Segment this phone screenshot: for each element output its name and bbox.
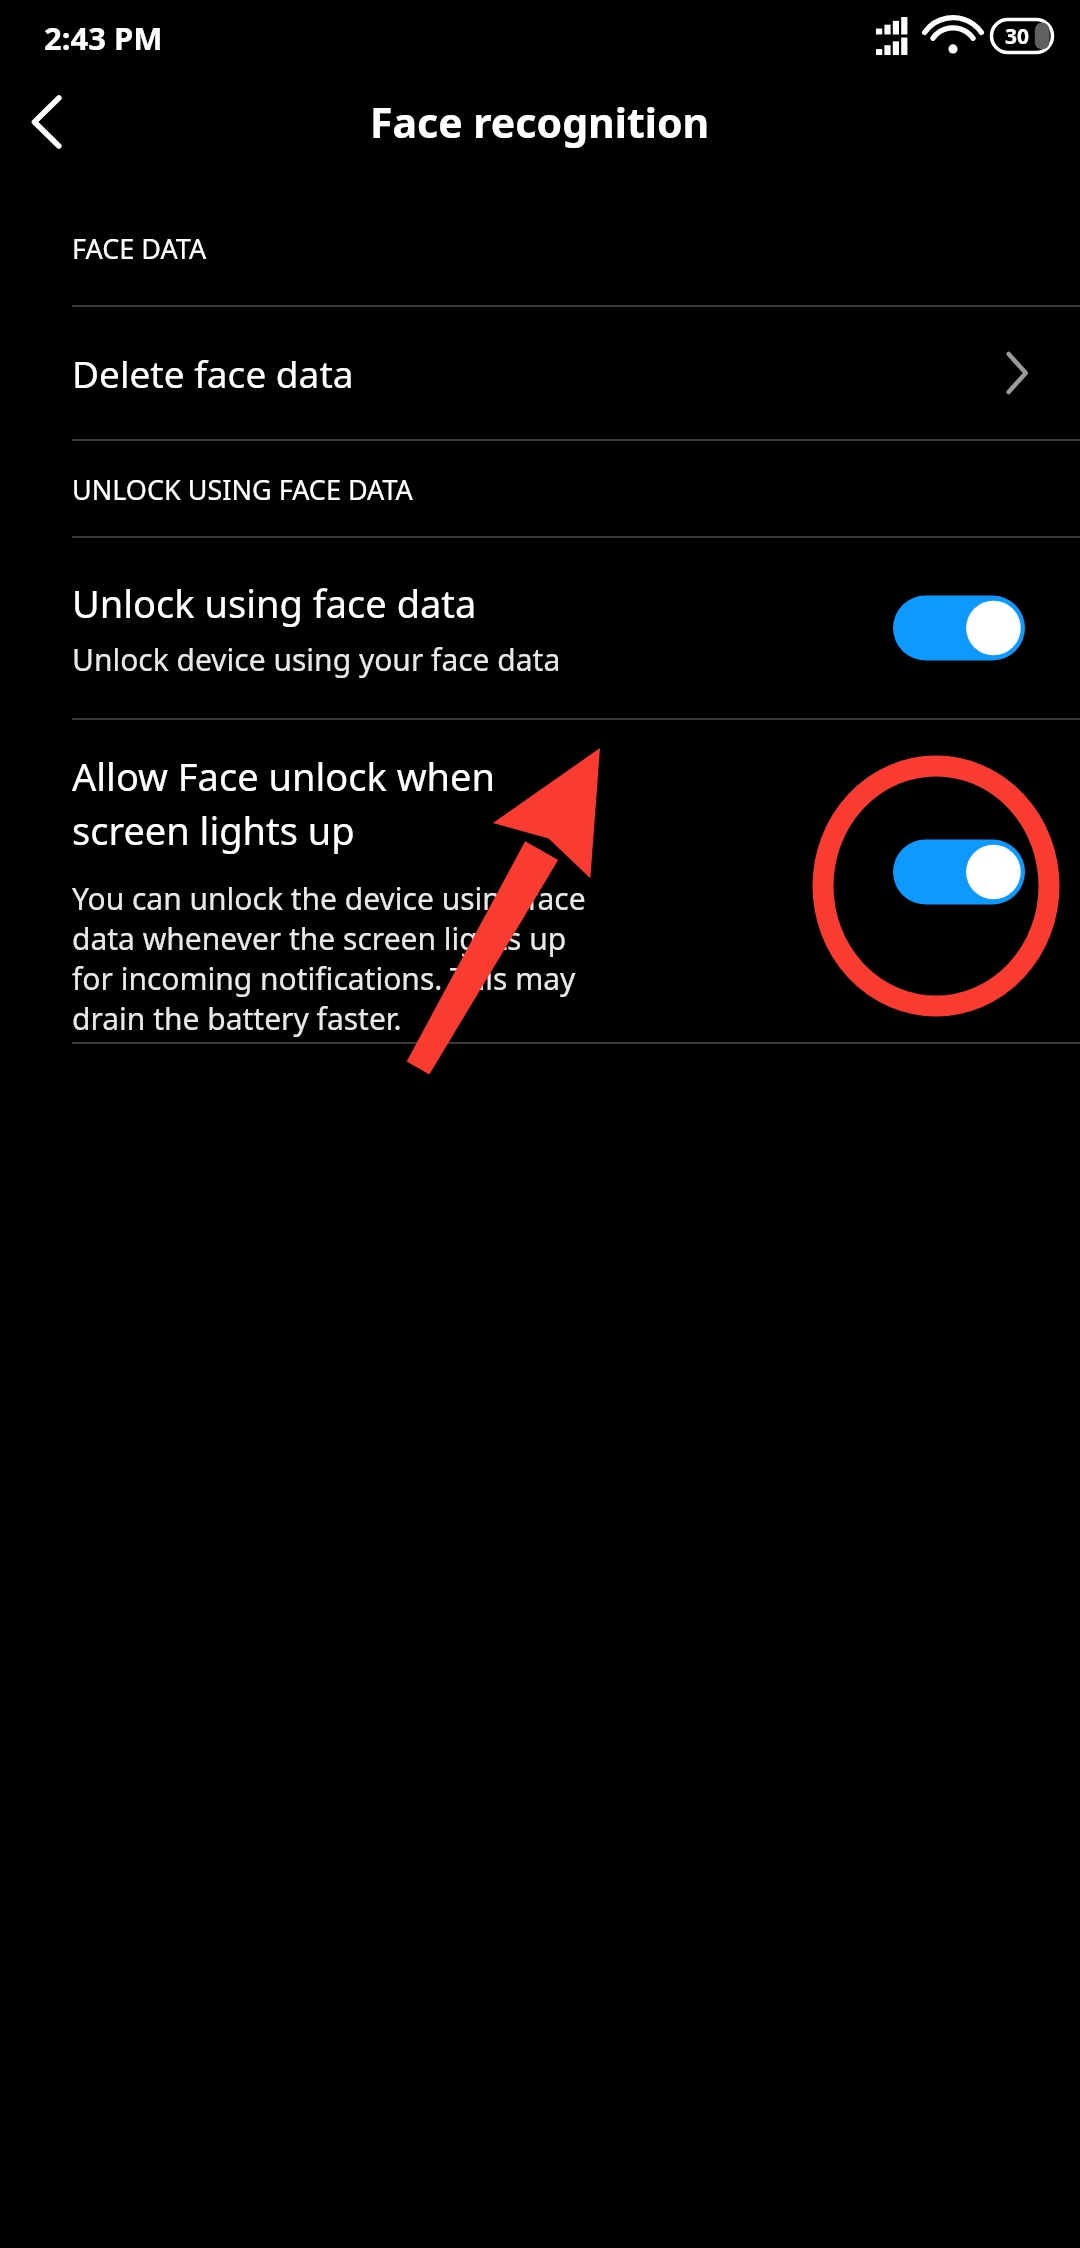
staticText: Delete face data — [72, 348, 354, 398]
button[interactable]: Unlock using face data — [0, 538, 1080, 718]
staticText: Unlock using face data — [72, 577, 477, 629]
staticText: Face recognition — [370, 94, 710, 150]
staticText: 2:43 PM — [44, 17, 163, 59]
staticText: UNLOCK USING FACE DATA — [72, 471, 413, 508]
button[interactable]: Delete face data — [0, 307, 1080, 439]
button[interactable]: Allow Face unlock when screen lights up — [0, 720, 1080, 1042]
staticText: Unlock device using your face data — [72, 639, 561, 680]
staticText: FACE DATA — [72, 230, 207, 267]
staticText: Allow Face unlock when screen lights up — [72, 750, 570, 856]
button[interactable]: Toggle on — [893, 837, 1025, 907]
staticText: You can unlock the device using face dat… — [72, 878, 590, 1039]
staticText: 30 — [1005, 22, 1030, 51]
button[interactable]: Back — [0, 74, 96, 170]
button[interactable]: Toggle on — [893, 593, 1025, 663]
